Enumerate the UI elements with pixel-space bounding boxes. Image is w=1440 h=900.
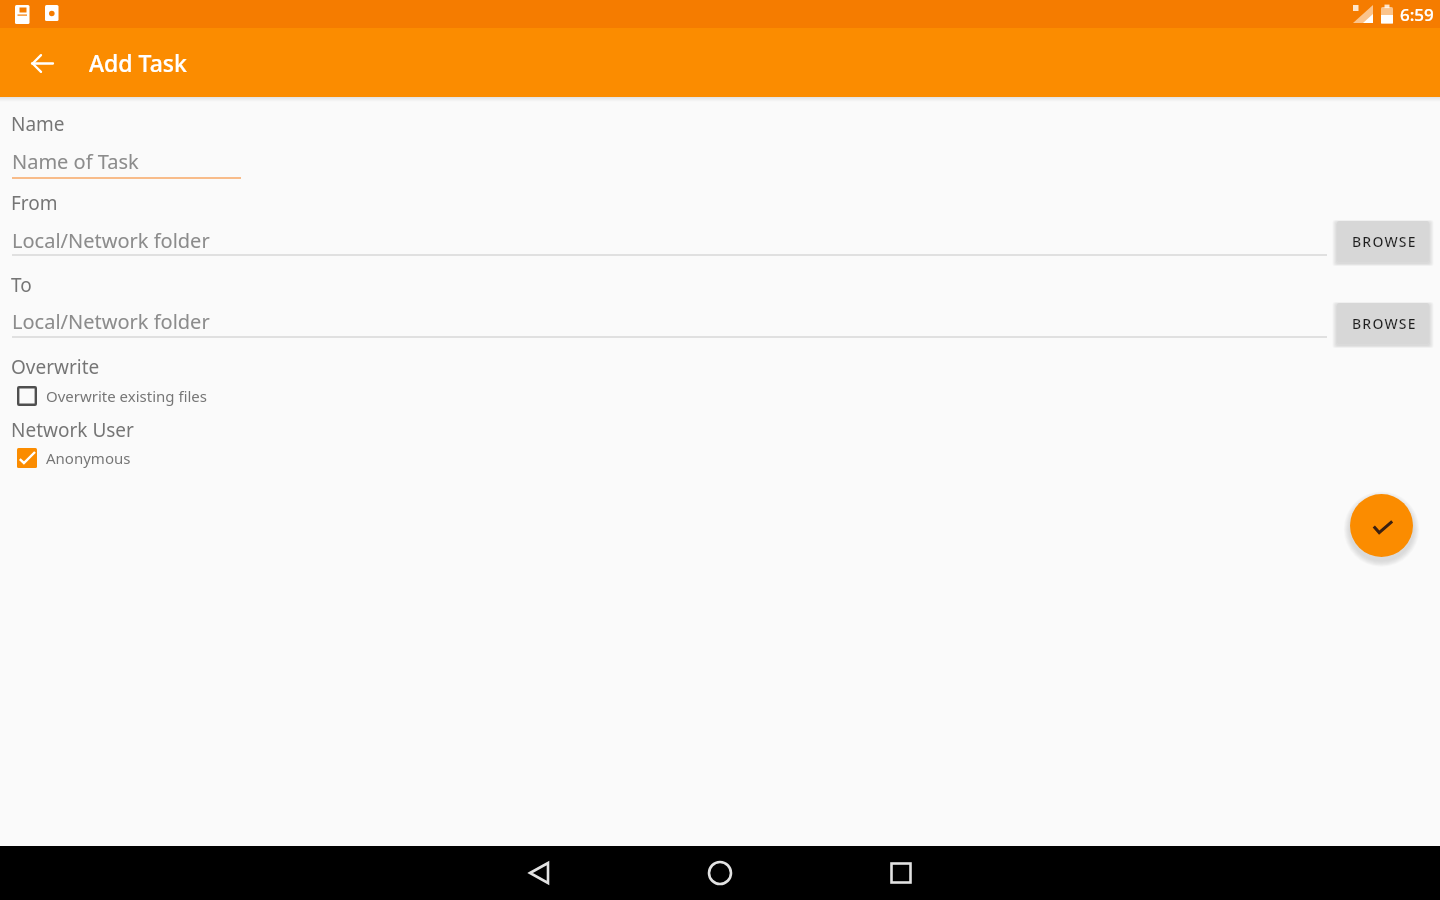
- staticText: 6:59: [1400, 3, 1434, 26]
- button[interactable]: Back: [18, 39, 66, 87]
- button[interactable]: BROWSE: [1337, 303, 1429, 344]
- staticText: Overwrite existing files: [46, 386, 207, 406]
- staticText: From: [11, 190, 58, 216]
- button[interactable]: Home: [693, 846, 747, 900]
- button[interactable]: Anonymous: [17, 448, 131, 468]
- staticText: Overwrite: [11, 354, 100, 380]
- button[interactable]: BROWSE: [1337, 221, 1429, 262]
- button[interactable]: Back: [512, 846, 566, 900]
- button[interactable]: Overwrite existing files: [17, 386, 207, 406]
- button[interactable]: Save task: [1350, 494, 1413, 557]
- staticText: Anonymous: [46, 448, 131, 468]
- staticText: Local/Network folder: [12, 308, 210, 335]
- staticText: BROWSE: [1352, 232, 1417, 251]
- staticText: Network User: [11, 417, 134, 443]
- staticText: Name: [11, 111, 65, 137]
- staticText: To: [11, 272, 32, 298]
- button[interactable]: Recent apps: [874, 846, 928, 900]
- staticText: Name of Task: [12, 148, 139, 175]
- staticText: BROWSE: [1352, 314, 1417, 333]
- staticText: Local/Network folder: [12, 227, 210, 254]
- staticText: Add Task: [89, 47, 187, 78]
